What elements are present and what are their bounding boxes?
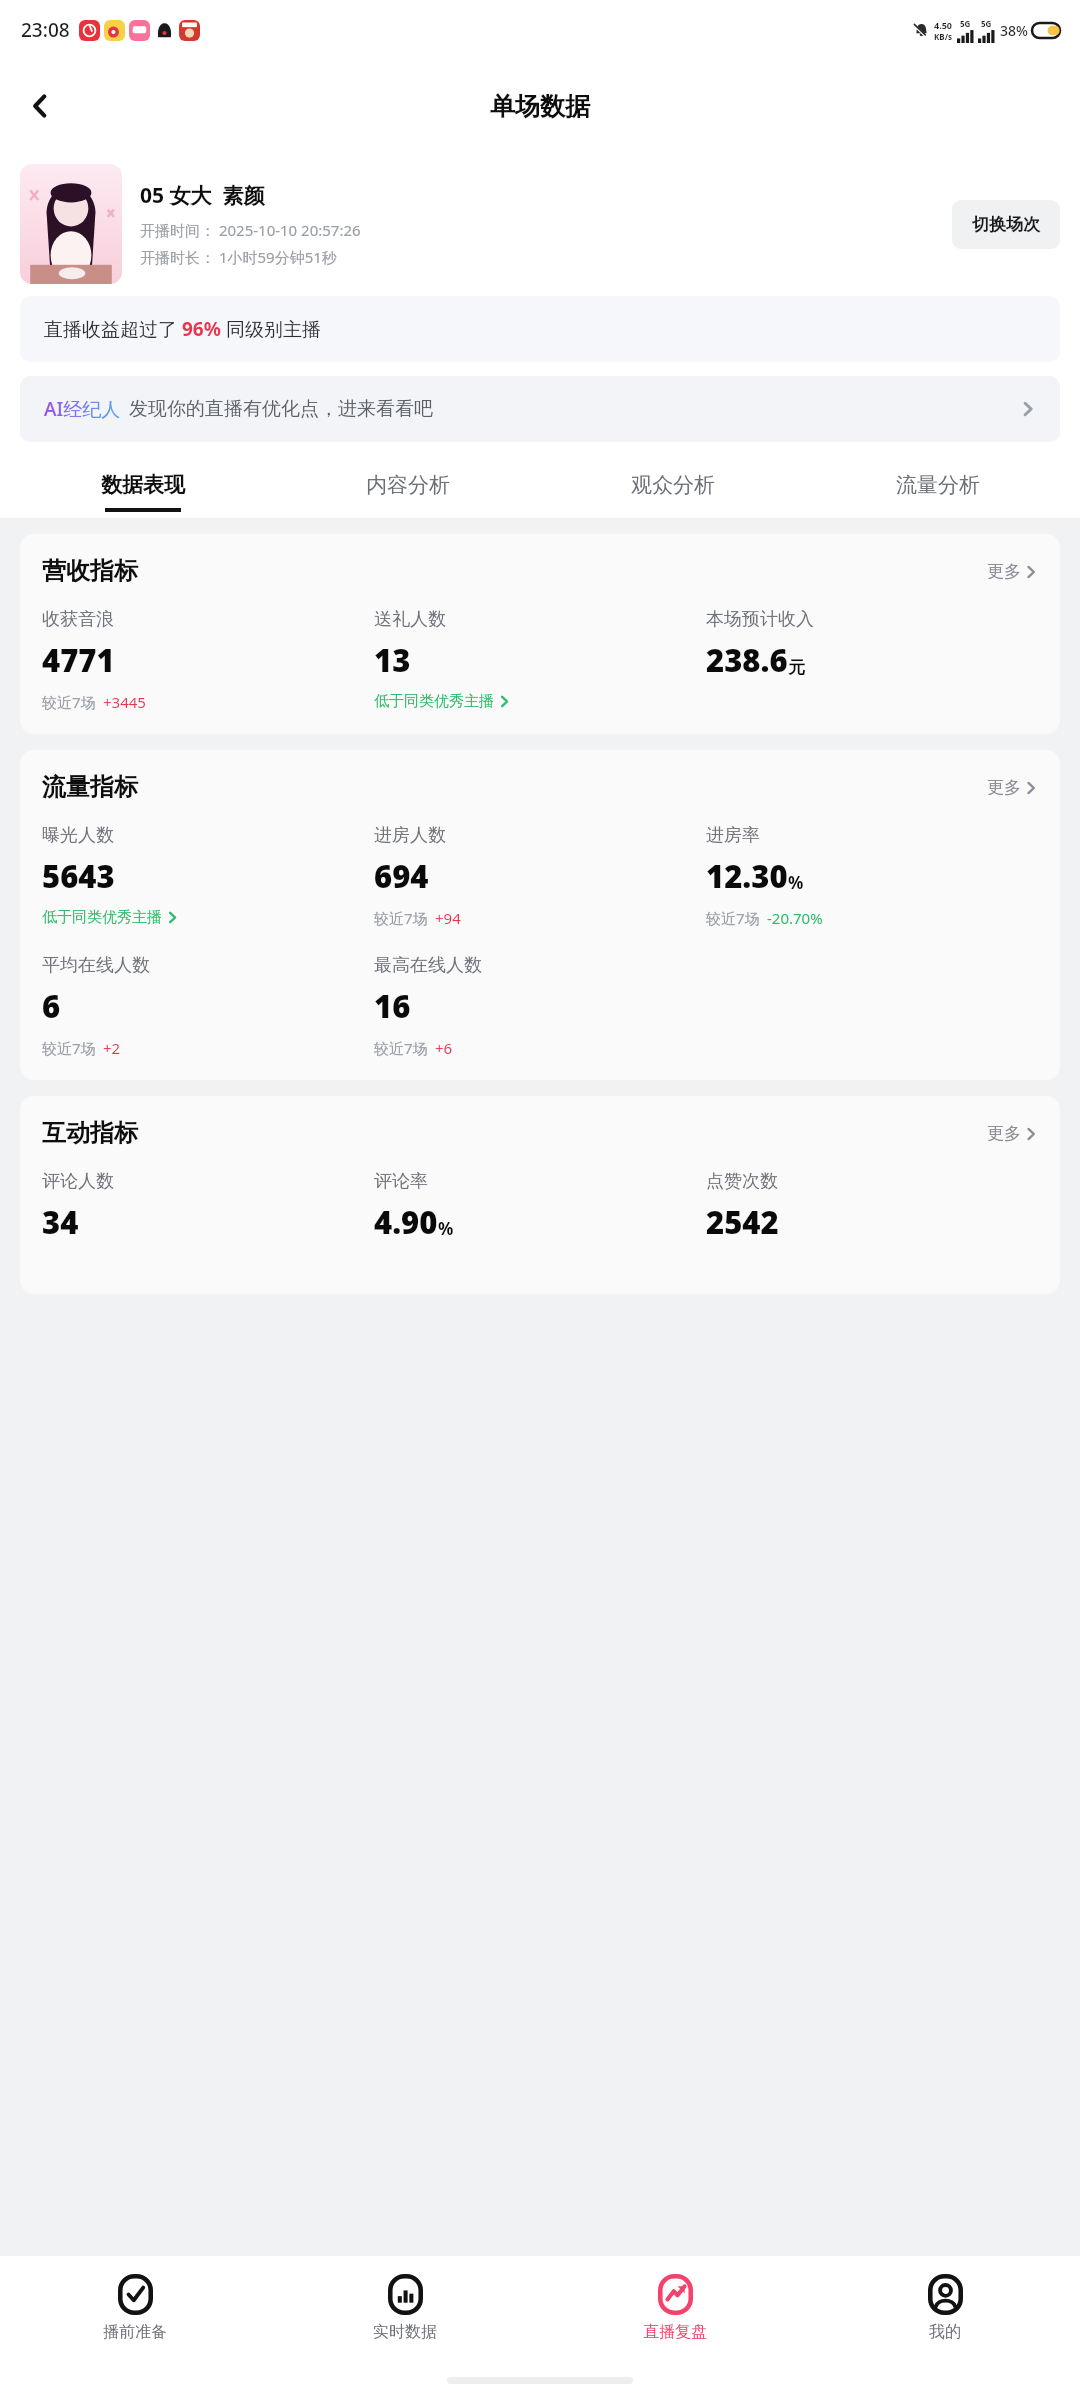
staticText: 低于同类优秀主播 <box>374 692 494 711</box>
staticText: 单场数据 <box>490 91 590 122</box>
staticText: 送礼人数 <box>374 608 446 631</box>
button[interactable]: 实时数据 <box>270 2268 540 2348</box>
staticText: 切换场次 <box>972 214 1040 235</box>
staticText: 238.6 <box>706 639 788 681</box>
staticText: 05 女大 素颜 <box>140 181 265 210</box>
staticText: 较近7场 <box>42 1038 96 1058</box>
staticText: 播前准备 <box>103 2322 167 2342</box>
staticText: +2 <box>103 1038 121 1058</box>
button[interactable]: 内容分析 <box>275 456 540 518</box>
staticText: 内容分析 <box>366 472 450 498</box>
staticText: 点赞次数 <box>706 1170 778 1193</box>
staticText: 4.50 <box>934 19 952 31</box>
staticText: 5G <box>960 18 971 29</box>
staticText: 评论人数 <box>42 1170 114 1193</box>
button[interactable]: 低于同类优秀主播 <box>374 692 511 711</box>
staticText: +94 <box>435 908 461 928</box>
button[interactable]: 播前准备 <box>0 2268 270 2348</box>
button[interactable]: 更多 <box>987 1123 1038 1144</box>
button[interactable]: 直播收益超过了 <box>20 296 1060 362</box>
staticText: 营收指标 <box>42 556 138 586</box>
staticText: % <box>788 871 804 894</box>
staticText: 较近7场 <box>374 908 428 928</box>
staticText: 我的 <box>929 2322 961 2342</box>
staticText: 开播时长： 1小时59分钟51秒 <box>140 247 337 267</box>
staticText: 694 <box>374 855 429 897</box>
button[interactable]: 观众分析 <box>540 456 805 518</box>
staticText: 开播时间： 2025-10-10 20:57:26 <box>140 220 361 240</box>
button[interactable]: Avatar <box>20 164 122 284</box>
staticText: 进房率 <box>706 824 760 847</box>
button[interactable]: 我的 <box>810 2268 1080 2348</box>
staticText: 较近7场 <box>42 692 96 712</box>
staticText: 较近7场 <box>374 1038 428 1058</box>
staticText: 流量指标 <box>42 772 138 802</box>
button[interactable]: Back <box>12 78 68 134</box>
staticText: 4.90 <box>374 1201 438 1243</box>
staticText: 5G <box>981 18 992 29</box>
staticText: 6 <box>42 985 61 1027</box>
staticText: 最高在线人数 <box>374 954 482 977</box>
staticText: 同级别主播 <box>221 316 321 342</box>
staticText: 96% <box>182 316 221 342</box>
staticText: 较近7场 <box>706 908 760 928</box>
button[interactable]: 更多 <box>987 561 1038 582</box>
button[interactable]: 低于同类优秀主播 <box>42 908 179 927</box>
staticText: AI经纪人 <box>44 396 121 422</box>
button[interactable]: 数据表现 <box>10 456 275 518</box>
staticText: 直播复盘 <box>643 2322 707 2342</box>
staticText: 元 <box>788 657 805 678</box>
staticText: 发现你的直播有优化点，进来看看吧 <box>129 397 433 421</box>
staticText: 5643 <box>42 855 115 897</box>
button[interactable]: 直播复盘 <box>540 2268 810 2348</box>
staticText: 平均在线人数 <box>42 954 150 977</box>
staticText: 4771 <box>42 639 115 681</box>
button[interactable]: 切换场次 <box>952 200 1060 249</box>
staticText: 更多 <box>987 777 1021 798</box>
staticText: +6 <box>435 1038 453 1058</box>
staticText: 互动指标 <box>42 1118 138 1148</box>
staticText: -20.70% <box>767 908 823 928</box>
button[interactable]: 更多 <box>987 777 1038 798</box>
staticText: 进房人数 <box>374 824 446 847</box>
staticText: 流量分析 <box>896 472 980 498</box>
staticText: 2542 <box>706 1201 779 1243</box>
staticText: 收获音浪 <box>42 608 114 631</box>
button[interactable]: 流量分析 <box>805 456 1070 518</box>
staticText: 实时数据 <box>373 2322 437 2342</box>
button[interactable]: AI经纪人 <box>20 376 1060 442</box>
staticText: 16 <box>374 985 411 1027</box>
staticText: 38% <box>1000 21 1028 40</box>
staticText: 更多 <box>987 1123 1021 1144</box>
staticText: 23:08 <box>21 17 70 43</box>
staticText: % <box>438 1217 454 1240</box>
staticText: 观众分析 <box>631 472 715 498</box>
staticText: 12.30 <box>706 855 788 897</box>
staticText: 直播收益超过了 <box>44 316 182 342</box>
staticText: +3445 <box>103 692 146 712</box>
staticText: 34 <box>42 1201 79 1243</box>
staticText: 数据表现 <box>101 472 185 498</box>
staticText: 13 <box>374 639 411 681</box>
staticText: 更多 <box>987 561 1021 582</box>
staticText: 评论率 <box>374 1170 428 1193</box>
staticText: 本场预计收入 <box>706 608 814 631</box>
staticText: 低于同类优秀主播 <box>42 908 162 927</box>
staticText: 曝光人数 <box>42 824 114 847</box>
staticText: KB/s <box>934 31 952 42</box>
